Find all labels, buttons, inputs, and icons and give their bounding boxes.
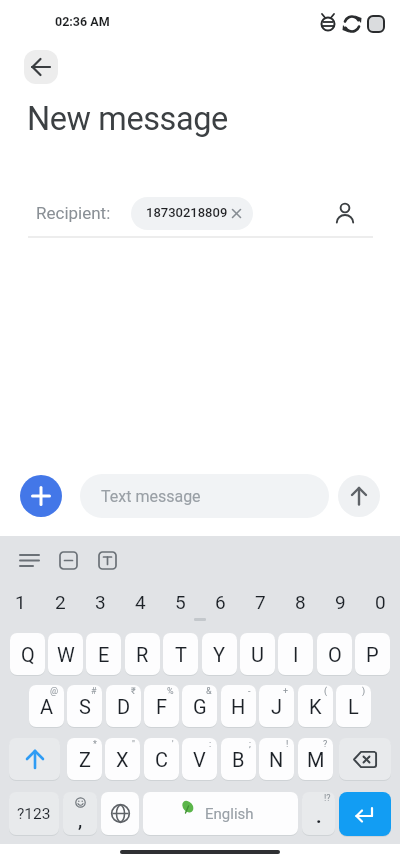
- staticText: P: [366, 643, 379, 666]
- staticText: :: [209, 739, 212, 750]
- button[interactable]: 0: [360, 582, 400, 622]
- staticText: @: [50, 686, 59, 697]
- button[interactable]: P: [355, 633, 390, 675]
- staticText: A: [40, 695, 54, 718]
- button[interactable]: English: [143, 792, 298, 835]
- button[interactable]: 1: [0, 582, 40, 622]
- button[interactable]: E: [86, 633, 121, 675]
- staticText: !?: [324, 793, 331, 804]
- button[interactable]: Text message: [80, 474, 329, 518]
- button[interactable]: .: [302, 792, 335, 835]
- button[interactable]: 3: [80, 582, 120, 622]
- button[interactable]: M: [298, 738, 333, 780]
- staticText: R: [136, 643, 149, 666]
- button[interactable]: O: [317, 633, 352, 675]
- button[interactable]: Y: [202, 633, 237, 675]
- staticText: ,: [78, 809, 83, 831]
- staticText: E: [98, 643, 110, 666]
- button[interactable]: 2: [40, 582, 80, 622]
- button[interactable]: 5: [160, 582, 200, 622]
- staticText: C: [155, 748, 169, 771]
- button[interactable]: [339, 738, 391, 780]
- staticText: K: [309, 695, 322, 718]
- staticText: (: [324, 686, 328, 697]
- button[interactable]: W: [48, 633, 83, 675]
- button[interactable]: [24, 50, 58, 84]
- button[interactable]: 6: [200, 582, 240, 622]
- staticText: !: [286, 739, 289, 750]
- button[interactable]: X: [105, 738, 140, 780]
- staticText: O: [328, 643, 342, 666]
- button[interactable]: [338, 475, 380, 517]
- staticText: %: [167, 686, 174, 697]
- button[interactable]: ?123: [9, 792, 59, 835]
- button[interactable]: N: [259, 738, 294, 780]
- staticText: S: [79, 695, 91, 718]
- button[interactable]: [20, 475, 62, 517]
- staticText: 2: [55, 591, 66, 613]
- button[interactable]: C: [144, 738, 179, 780]
- staticText: ): [362, 686, 366, 697]
- button[interactable]: V: [182, 738, 217, 780]
- staticText: L: [348, 695, 359, 718]
- button[interactable]: A: [29, 685, 64, 727]
- staticText: 9: [335, 591, 346, 613]
- staticText: W: [57, 643, 75, 666]
- staticText: 8: [295, 591, 306, 613]
- staticText: Y: [213, 643, 226, 666]
- staticText: English: [205, 805, 254, 823]
- button[interactable]: L: [336, 685, 371, 727]
- staticText: +: [283, 686, 289, 697]
- button[interactable]: F: [144, 685, 179, 727]
- button[interactable]: 7: [240, 582, 280, 622]
- staticText: ₹: [131, 686, 136, 697]
- button[interactable]: ,: [63, 792, 97, 835]
- staticText: N: [269, 748, 284, 771]
- staticText: .: [316, 805, 322, 827]
- button[interactable]: K: [298, 685, 333, 727]
- staticText: 0: [375, 591, 386, 613]
- staticText: ?: [323, 739, 328, 750]
- button[interactable]: D: [106, 685, 141, 727]
- button[interactable]: J: [259, 685, 294, 727]
- button[interactable]: 9: [320, 582, 360, 622]
- staticText: J: [271, 695, 283, 718]
- button[interactable]: H: [221, 685, 256, 727]
- button[interactable]: [9, 738, 60, 780]
- staticText: ": [132, 739, 135, 750]
- staticText: Q: [21, 643, 35, 666]
- staticText: X: [116, 748, 129, 771]
- staticText: 1: [15, 591, 26, 613]
- staticText: Text message: [101, 487, 201, 506]
- button[interactable]: R: [125, 633, 160, 675]
- button[interactable]: [339, 792, 391, 836]
- staticText: ?123: [17, 805, 51, 823]
- staticText: D: [117, 695, 131, 718]
- button[interactable]: B: [221, 738, 256, 780]
- staticText: ;: [249, 739, 251, 750]
- staticText: 6: [215, 591, 226, 613]
- staticText: Z: [79, 748, 91, 771]
- button[interactable]: [330, 198, 360, 228]
- staticText: 4: [135, 591, 146, 613]
- button[interactable]: 4: [120, 582, 160, 622]
- button[interactable]: S: [67, 685, 102, 727]
- staticText: #: [91, 686, 97, 697]
- staticText: G: [193, 695, 207, 718]
- staticText: M: [307, 748, 325, 771]
- button[interactable]: [101, 792, 139, 835]
- button[interactable]: T: [163, 633, 198, 675]
- button[interactable]: 8: [280, 582, 320, 622]
- button[interactable]: 18730218809: [131, 197, 253, 230]
- button[interactable]: Z: [67, 738, 102, 780]
- staticText: U: [251, 643, 264, 666]
- staticText: T: [175, 643, 187, 666]
- staticText: 18730218809: [146, 205, 228, 220]
- staticText: 3: [95, 591, 106, 613]
- button[interactable]: I: [278, 633, 313, 675]
- staticText: H: [231, 695, 246, 718]
- staticText: &: [206, 686, 212, 697]
- button[interactable]: G: [182, 685, 217, 727]
- button[interactable]: Q: [10, 633, 45, 675]
- button[interactable]: U: [240, 633, 275, 675]
